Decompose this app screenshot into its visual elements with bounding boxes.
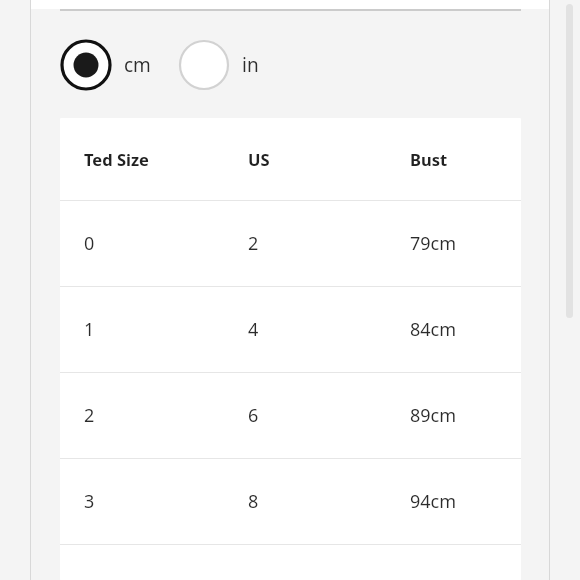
- staticText: 3: [84, 489, 95, 514]
- button[interactable]: in: [178, 39, 259, 91]
- staticText: Bust: [410, 148, 448, 170]
- staticText: 2: [84, 403, 95, 428]
- staticText: Ted Size: [84, 148, 149, 170]
- button[interactable]: 3: [60, 459, 521, 544]
- staticText: in: [242, 52, 259, 78]
- staticText: 94cm: [410, 489, 457, 514]
- button[interactable]: 2: [60, 373, 521, 458]
- staticText: 1: [84, 317, 95, 342]
- staticText: 6: [248, 403, 259, 428]
- staticText: cm: [124, 52, 151, 78]
- staticText: 89cm: [410, 403, 457, 428]
- staticText: US: [248, 148, 270, 170]
- staticText: 4: [248, 317, 259, 342]
- staticText: 84cm: [410, 317, 457, 342]
- button[interactable]: Ted Size: [60, 118, 521, 200]
- staticText: 79cm: [410, 231, 457, 256]
- button[interactable]: cm: [60, 39, 151, 91]
- staticText: 0: [84, 231, 95, 256]
- staticText: 2: [248, 231, 259, 256]
- button[interactable]: 1: [60, 287, 521, 372]
- staticText: 8: [248, 489, 259, 514]
- button[interactable]: 0: [60, 201, 521, 286]
